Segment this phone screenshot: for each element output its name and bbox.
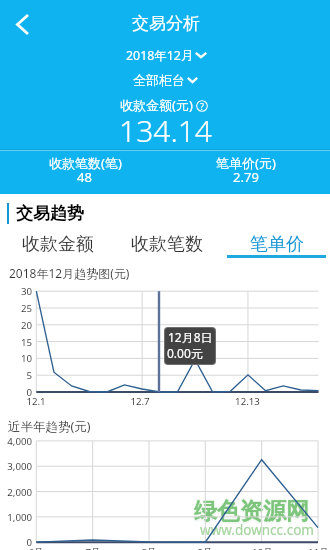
button[interactable]: 收款金额 — [3, 229, 113, 259]
staticText: ? — [200, 100, 204, 112]
staticText: 绿色资源网 — [193, 497, 308, 526]
staticText: 12.1 — [26, 395, 46, 408]
staticText: www.downcc.com — [200, 521, 314, 539]
staticText: 0.00元 — [167, 345, 203, 361]
staticText: 4,000 — [7, 435, 32, 448]
staticText: 8月 — [141, 546, 157, 550]
staticText: 30 — [20, 285, 32, 298]
staticText: 全部柜台 — [133, 72, 185, 88]
button[interactable]: 全部柜台 — [131, 69, 200, 92]
button[interactable]: Help — [196, 100, 208, 112]
staticText: 笔单价(元) — [216, 154, 276, 172]
staticText: 1,000 — [7, 511, 32, 524]
staticText: 10 — [20, 352, 32, 365]
staticText: 11月 — [308, 546, 329, 550]
staticText: 9月 — [197, 546, 213, 550]
staticText: 交易分析 — [132, 13, 200, 34]
staticText: 134.14 — [119, 110, 212, 150]
staticText: 25 — [20, 302, 32, 315]
staticText: 绿色资源网 — [194, 496, 309, 525]
staticText: 3,000 — [7, 460, 32, 473]
staticText: 2018年12月 — [126, 47, 194, 64]
button[interactable]: 2018年12月 — [124, 43, 208, 66]
staticText: 近半年趋势(元) — [8, 418, 91, 435]
button[interactable]: Back — [0, 2, 44, 47]
staticText: 48 — [77, 168, 92, 186]
staticText: 收款金额(元) — [120, 96, 193, 114]
staticText: 笔单价 — [250, 233, 304, 256]
staticText: 0 — [26, 386, 32, 399]
staticText: 15 — [20, 336, 32, 349]
staticText: 20 — [20, 319, 32, 332]
staticText: 7月 — [85, 546, 101, 550]
staticText: 交易趋势 — [16, 203, 84, 224]
staticText: 绿色资源网 — [194, 499, 309, 528]
staticText: 12.7 — [130, 395, 150, 408]
staticText: 5 — [26, 369, 32, 382]
button[interactable]: 收款笔数 — [112, 229, 222, 259]
staticText: 12月8日 — [168, 329, 213, 345]
staticText: 收款笔数 — [131, 233, 203, 256]
staticText: 6月 — [28, 546, 44, 550]
button[interactable]: 笔单价 — [222, 229, 330, 259]
staticText: 2,000 — [7, 486, 32, 499]
staticText: 12.13 — [235, 395, 260, 408]
staticText: 收款笔数(笔) — [49, 154, 122, 172]
staticText: 2.79 — [233, 168, 259, 186]
staticText: 收款金额 — [22, 233, 94, 256]
staticText: 0 — [26, 536, 32, 549]
staticText: 10月 — [252, 546, 273, 550]
staticText: 绿色资源网 — [194, 497, 309, 526]
staticText: 2018年12月趋势图(元) — [9, 265, 130, 281]
staticText: 绿色资源网 — [195, 497, 310, 526]
